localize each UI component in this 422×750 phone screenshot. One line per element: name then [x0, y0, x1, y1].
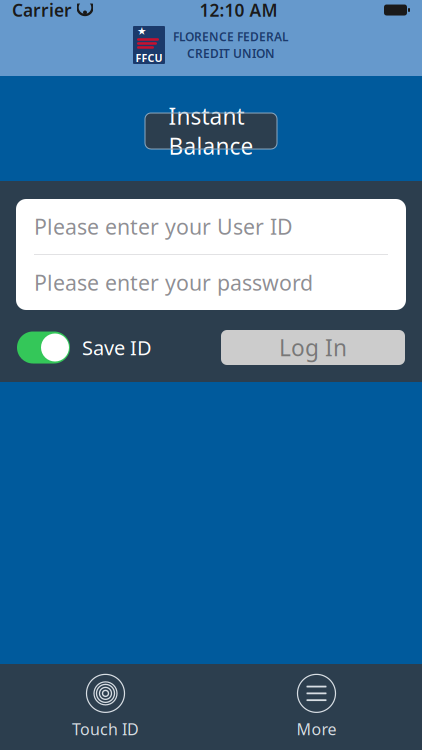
- staticText: Please enter your User ID: [34, 212, 293, 241]
- staticText: ★: [137, 25, 147, 37]
- staticText: More: [296, 718, 336, 740]
- staticText: 12:10 AM: [199, 0, 277, 21]
- staticText: FFCU: [135, 51, 162, 65]
- button[interactable]: Instant Balance: [145, 113, 277, 149]
- button[interactable]: More: [211, 672, 422, 742]
- button[interactable]: Save ID: [17, 331, 152, 363]
- staticText: Instant Balance: [168, 101, 253, 161]
- button[interactable]: Please enter your User ID: [16, 199, 406, 254]
- staticText: Save ID: [82, 334, 152, 361]
- staticText: FLORENCE FEDERAL: [173, 29, 289, 44]
- button[interactable]: Log In: [221, 330, 405, 365]
- staticText: Log In: [279, 332, 347, 362]
- staticText: Carrier: [12, 0, 72, 21]
- button[interactable]: Please enter your password: [16, 255, 406, 310]
- staticText: CREDIT UNION: [187, 45, 275, 61]
- staticText: Touch ID: [72, 718, 139, 740]
- button[interactable]: Touch ID: [0, 672, 211, 742]
- staticText: Please enter your password: [34, 268, 313, 297]
